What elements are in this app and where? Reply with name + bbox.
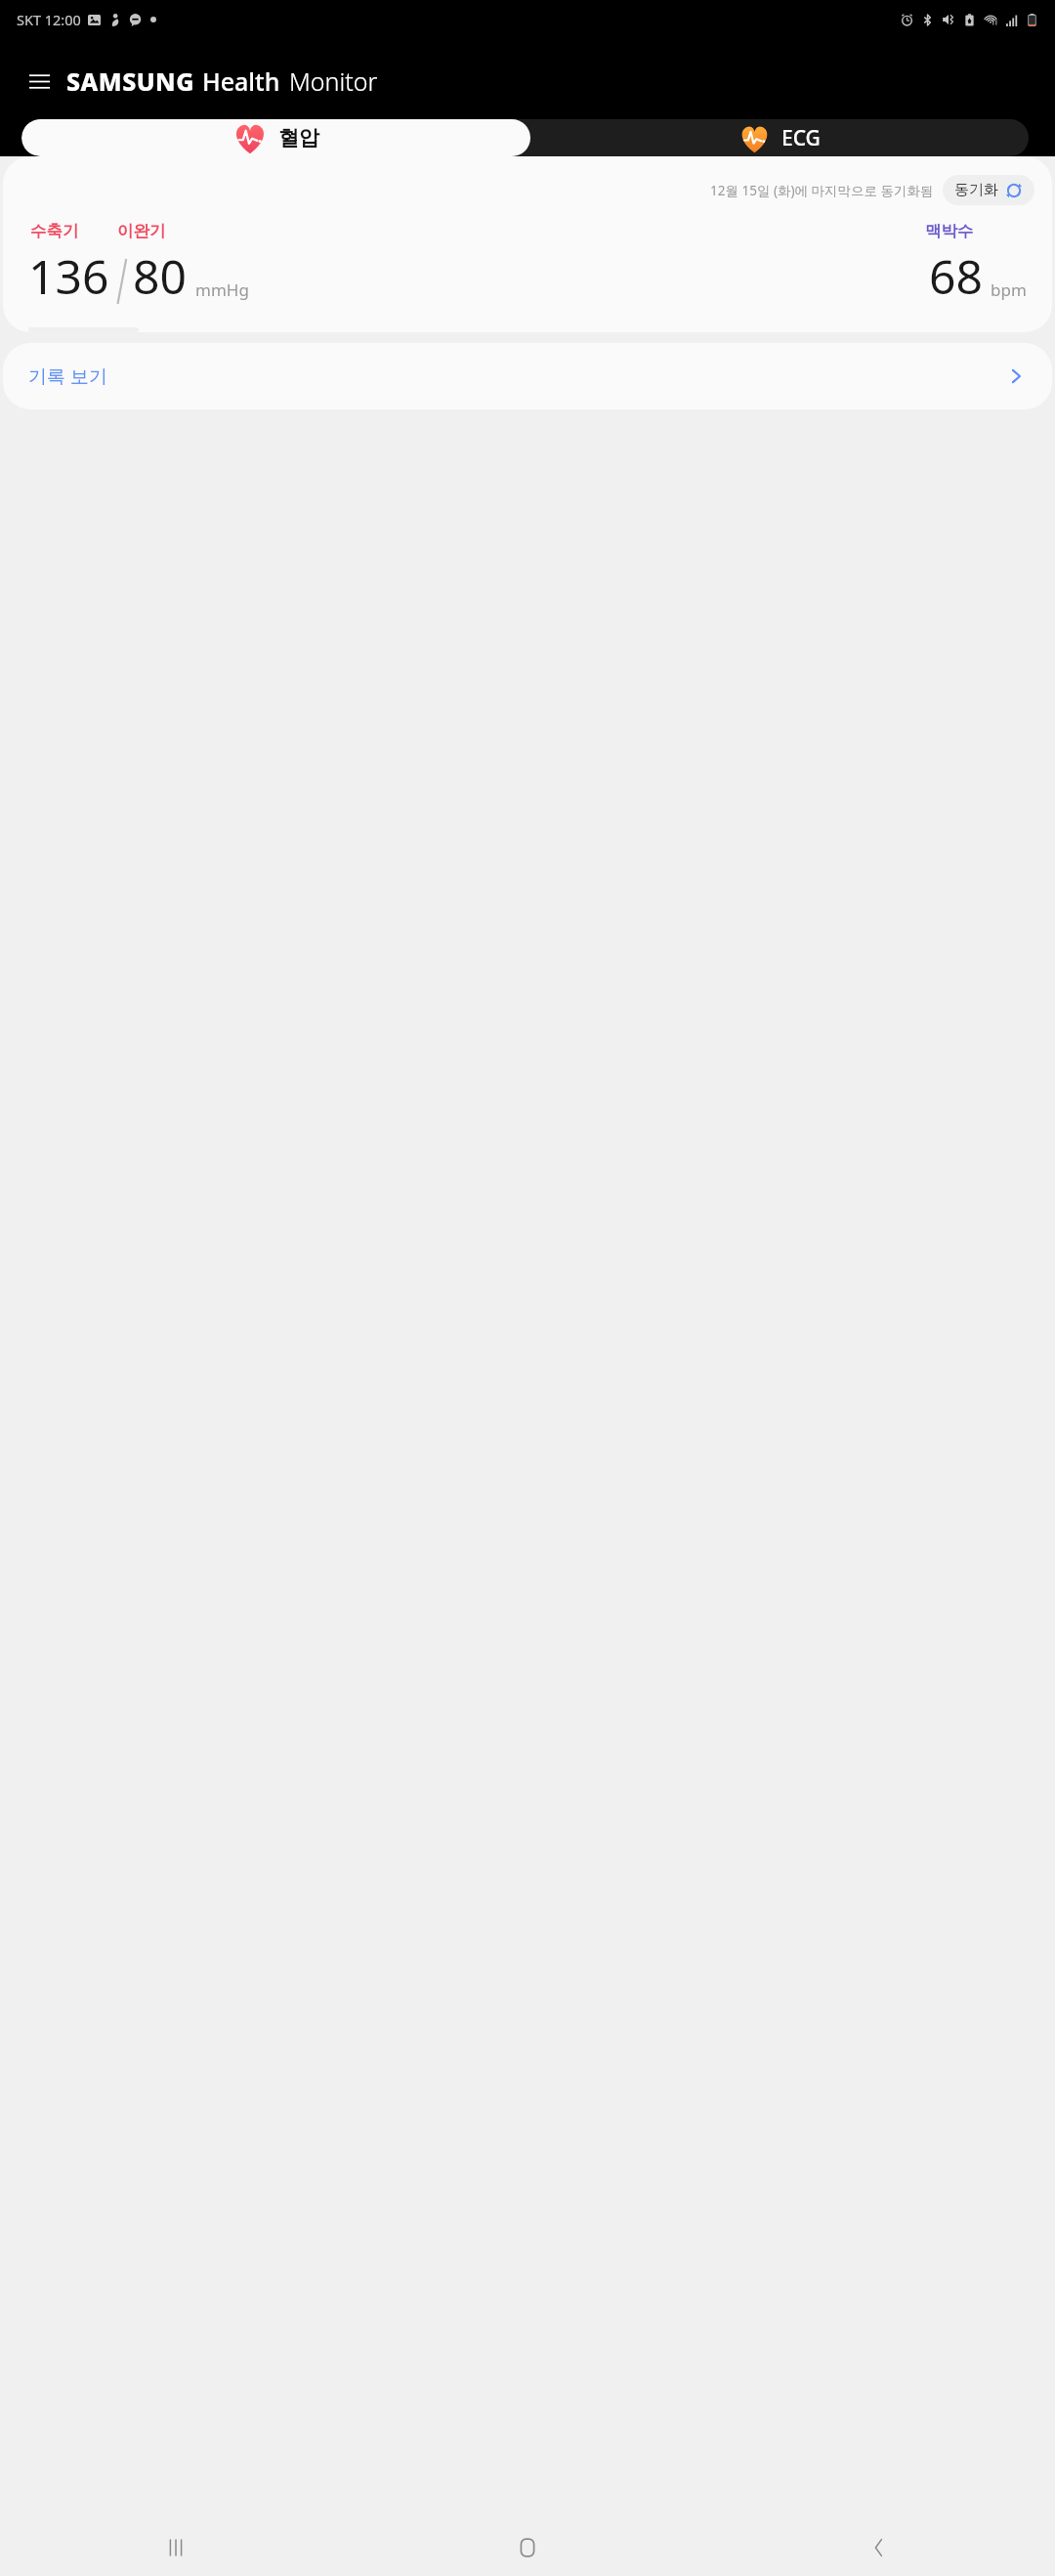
staticText: ECG — [781, 124, 821, 152]
staticText: 136 — [28, 244, 109, 308]
staticText: 동기화 — [954, 181, 998, 199]
button[interactable]: Menu — [16, 58, 63, 105]
staticText: 맥박수 — [925, 221, 974, 241]
staticText: 혈압 — [278, 125, 319, 150]
staticText: 기록 보기 — [28, 364, 107, 389]
button[interactable]: ECG — [530, 119, 1029, 156]
staticText: 80 — [133, 244, 187, 308]
staticText: SAMSUNG — [66, 64, 194, 98]
button[interactable]: 동기화 — [943, 175, 1034, 205]
staticText: Monitor — [289, 64, 378, 98]
staticText: mmHg — [195, 279, 249, 301]
button[interactable]: Back — [703, 2519, 1055, 2576]
staticText: 68 — [929, 244, 983, 308]
staticText: 이완기 — [117, 221, 166, 241]
staticText: Health — [202, 64, 280, 98]
button[interactable]: Recents — [0, 2519, 352, 2576]
button[interactable]: 혈압 — [21, 119, 530, 156]
staticText: bpm — [991, 279, 1027, 301]
staticText: SKT 12:00 — [17, 10, 81, 29]
button[interactable]: Home — [352, 2519, 703, 2576]
button[interactable]: 기록 보기 — [3, 343, 1052, 409]
staticText: 수축기 — [30, 221, 79, 241]
button[interactable]: 메모 추가 — [28, 327, 139, 332]
staticText: 12월 15일 (화)에 마지막으로 동기화됨 — [710, 182, 934, 199]
